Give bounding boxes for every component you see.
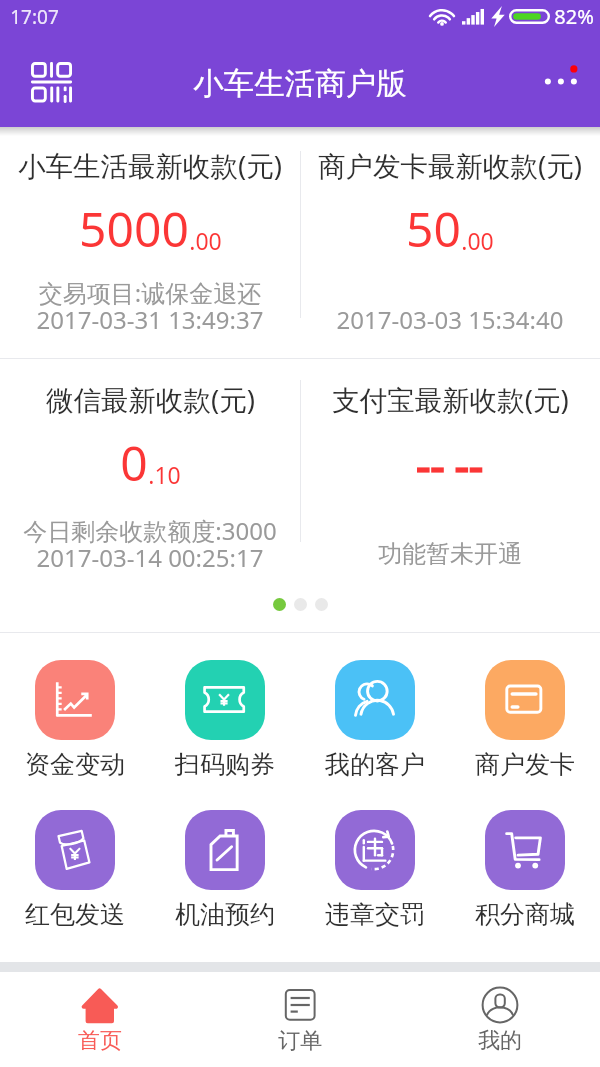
button[interactable]: 支付宝最新收款(元): [300, 359, 600, 585]
staticText: 订单: [278, 1027, 322, 1055]
staticText: 我的: [478, 1027, 522, 1055]
staticText: 交易项目:诚保金退还 2017-03-31 13:49:37: [0, 276, 300, 336]
button[interactable]: 小车生活最新收款(元): [0, 127, 300, 358]
button[interactable]: 商户发卡最新收款(元): [300, 127, 600, 358]
button[interactable]: 我的客户: [300, 660, 450, 780]
staticText: 商户发卡: [475, 749, 575, 780]
staticText: 违章交罚: [325, 899, 425, 930]
staticText: 17:07: [10, 4, 59, 30]
staticText: 资金变动: [25, 749, 125, 780]
button[interactable]: 订单: [200, 972, 400, 1067]
button[interactable]: 我的: [400, 972, 600, 1067]
button[interactable]: 首页: [0, 972, 200, 1067]
button[interactable]: 扫码购券: [150, 660, 300, 780]
staticText: 小车生活最新收款(元): [18, 147, 282, 185]
staticText: .10: [148, 459, 181, 490]
staticText: 扫码购券: [175, 749, 275, 780]
staticText: .00: [461, 225, 494, 256]
staticText: 小车生活商户版: [193, 65, 407, 103]
staticText: 首页: [78, 1027, 122, 1055]
staticText: 2017-03-03 15:34:40: [300, 303, 600, 336]
button[interactable]: 微信最新收款(元): [0, 359, 300, 585]
staticText: 机油预约: [175, 899, 275, 930]
button[interactable]: Scan QR code: [20, 51, 82, 113]
button[interactable]: 资金变动: [0, 660, 150, 780]
staticText: 50: [406, 196, 461, 261]
staticText: 我的客户: [325, 749, 425, 780]
staticText: 商户发卡最新收款(元): [318, 147, 582, 185]
staticText: 功能暂未开通: [300, 539, 600, 569]
staticText: 微信最新收款(元): [46, 381, 255, 419]
staticText: 0: [120, 430, 148, 495]
staticText: 红包发送: [25, 899, 125, 930]
button[interactable]: 商户发卡: [450, 660, 600, 780]
staticText: 积分商城: [475, 899, 575, 930]
staticText: 82%: [554, 3, 594, 30]
button[interactable]: 机油预约: [150, 810, 300, 930]
button[interactable]: 红包发送: [0, 810, 150, 930]
staticText: 今日剩余收款额度:3000 2017-03-14 00:25:17: [0, 514, 300, 574]
staticText: 5000: [79, 196, 189, 261]
staticText: .00: [189, 225, 222, 256]
button[interactable]: More options: [525, 56, 585, 116]
button[interactable]: 违章交罚: [300, 810, 450, 930]
staticText: 支付宝最新收款(元): [332, 381, 569, 419]
button[interactable]: 积分商城: [450, 810, 600, 930]
